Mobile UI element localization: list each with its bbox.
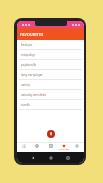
- staticText: moqudigi: [21, 53, 35, 57]
- button[interactable]: SETTINGS: [71, 143, 83, 148]
- staticText: vatuatg-nerishida: [21, 93, 46, 97]
- other: LIST: [49, 144, 53, 148]
- staticText: lang.narquligar: [21, 73, 43, 77]
- staticText: vatroij: [21, 83, 30, 87]
- button[interactable]: pojoborilik: [17, 60, 84, 70]
- button[interactable]: LIST: [45, 143, 57, 148]
- staticText: bextiyor: [21, 43, 33, 47]
- other: Recents: [66, 156, 70, 160]
- button[interactable]: FAVOURITES: [17, 28, 84, 40]
- other: Home: [49, 156, 53, 160]
- button[interactable]: bextiyor: [17, 40, 84, 50]
- other: SETTINGS: [75, 144, 79, 148]
- other: Back: [31, 156, 35, 160]
- button[interactable]: vatroij: [17, 80, 84, 90]
- button[interactable]: FAVOURITES: [58, 143, 70, 151]
- button[interactable]: MAP: [31, 143, 43, 148]
- button[interactable]: NEARBY: [18, 143, 30, 148]
- staticText: tumlik: [21, 103, 30, 107]
- other: MAP: [35, 144, 39, 148]
- staticText: FAVOURITES: [20, 32, 44, 37]
- staticText: FAVOURITES: [58, 148, 70, 151]
- button[interactable]: Add place: [47, 130, 55, 138]
- other: NEARBY: [22, 144, 26, 148]
- staticText: pojoborilik: [21, 63, 37, 67]
- button[interactable]: vatuatg-nerishida: [17, 90, 84, 100]
- button[interactable]: lang.narquligar: [17, 70, 84, 80]
- button[interactable]: moqudigi: [17, 50, 84, 60]
- other: FAVOURITES: [62, 144, 66, 148]
- button[interactable]: tumlik: [17, 100, 84, 110]
